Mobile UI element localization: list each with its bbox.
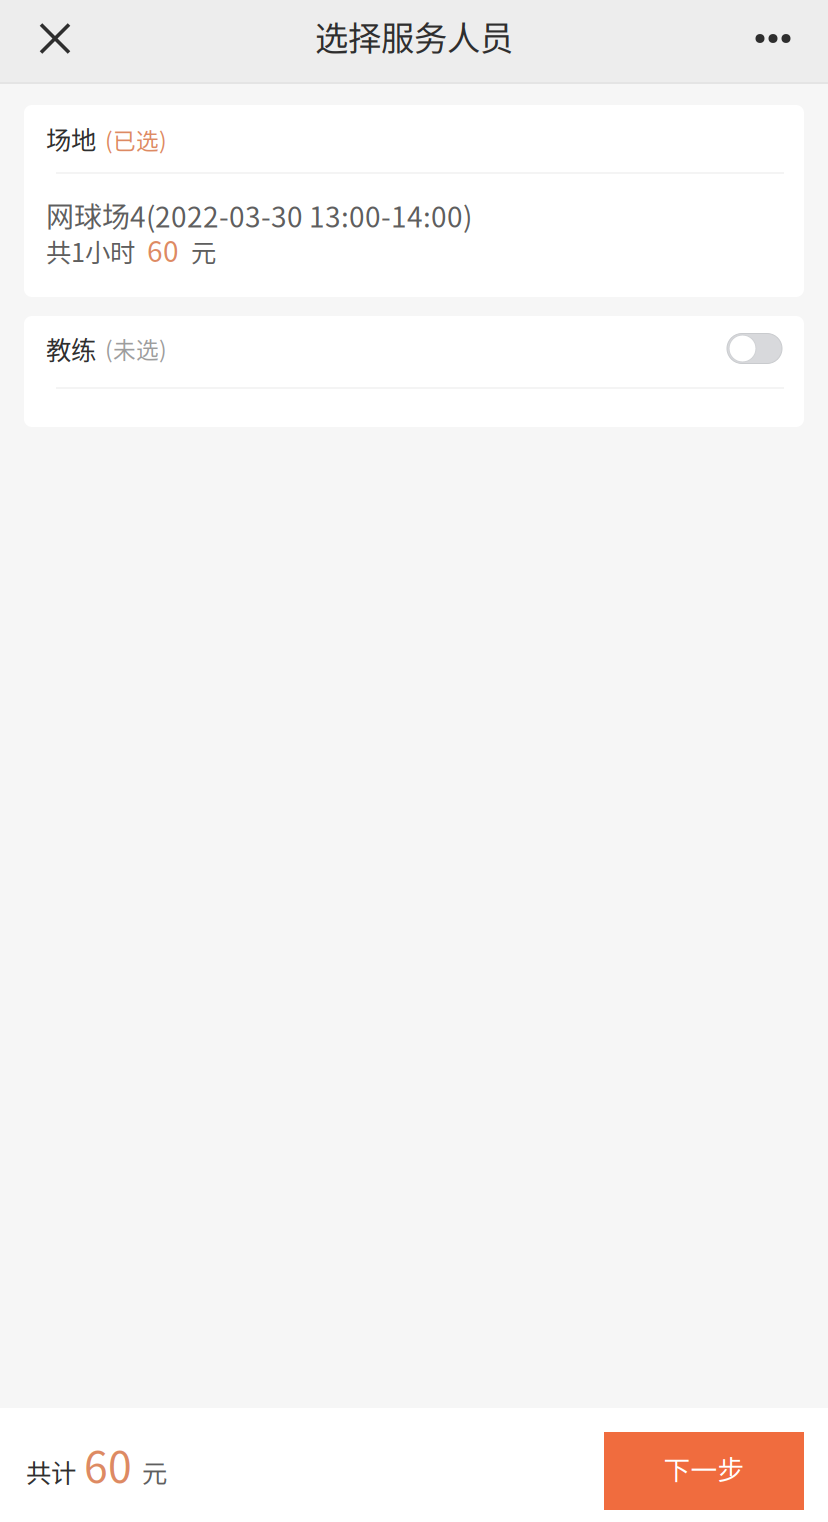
staticText: 元 <box>142 1453 167 1490</box>
button[interactable]: 下一步 <box>604 1432 804 1510</box>
staticText: 60 <box>147 229 179 270</box>
staticText: 网球场4(2022-03-30 13:00-14:00) <box>46 195 472 235</box>
staticText: 场地 <box>46 120 96 157</box>
staticText: (已选) <box>105 123 167 156</box>
staticText: 下一步 <box>663 1449 744 1487</box>
staticText: (未选) <box>105 332 167 365</box>
button[interactable]: 关闭 <box>13 0 97 82</box>
button[interactable]: 教练开关 <box>727 333 782 363</box>
button[interactable]: 更多 <box>729 0 817 82</box>
staticText: 选择服务人员 <box>315 12 513 60</box>
staticText: 元 <box>191 233 216 269</box>
staticText: 教练 <box>46 330 96 367</box>
staticText: 共1小时 <box>46 233 135 269</box>
staticText: 共计 <box>26 1453 76 1490</box>
staticText: 60 <box>84 1433 132 1495</box>
